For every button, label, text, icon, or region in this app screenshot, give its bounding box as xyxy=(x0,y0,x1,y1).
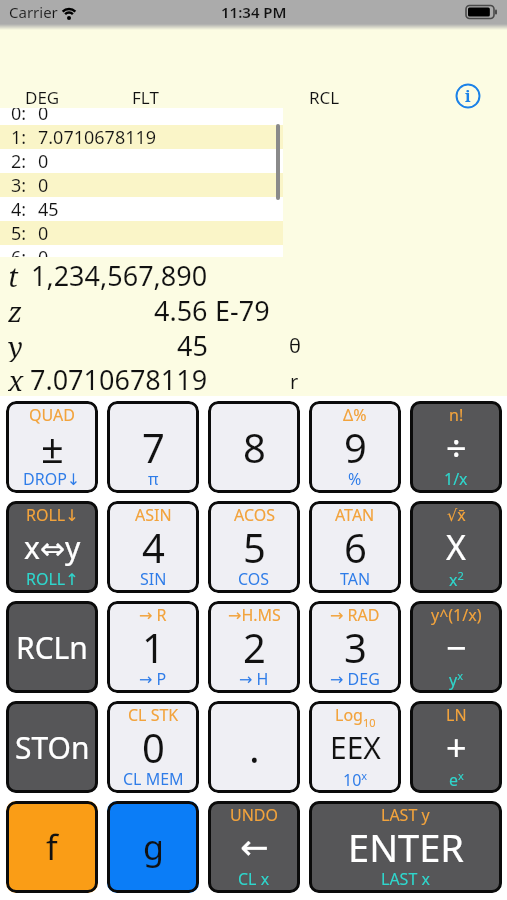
staticText: 3: xyxy=(11,173,27,197)
staticText: 10x xyxy=(343,768,368,790)
button[interactable]: √x̄ xyxy=(410,501,502,593)
staticText: r xyxy=(290,368,299,395)
button[interactable]: . xyxy=(208,701,300,793)
staticText: f xyxy=(46,824,58,870)
staticText: ← xyxy=(240,827,269,867)
button[interactable]: 3: xyxy=(0,173,283,197)
button[interactable]: Log10 xyxy=(309,701,401,793)
staticText: 0 xyxy=(38,149,49,173)
staticText: + xyxy=(446,723,467,772)
staticText: FLT xyxy=(132,86,159,109)
staticText: DEG xyxy=(25,86,60,109)
staticText: 7.0710678119 xyxy=(30,361,208,396)
button[interactable]: 5: xyxy=(0,221,283,245)
staticText: 6 xyxy=(344,520,367,574)
button[interactable]: i xyxy=(455,83,481,109)
staticText: 4: xyxy=(11,197,27,221)
button[interactable]: STOn xyxy=(6,701,98,793)
staticText: EEX xyxy=(330,727,381,768)
staticText: Log10 xyxy=(335,704,376,730)
staticText: 1: xyxy=(11,125,27,149)
button[interactable]: y^(1/x) xyxy=(410,601,502,693)
staticText: 8 xyxy=(243,420,266,474)
staticText: 5: xyxy=(11,221,27,245)
button[interactable]: ASIN xyxy=(107,501,199,593)
button[interactable]: RCLn xyxy=(6,601,98,693)
button[interactable]: 6: xyxy=(0,245,283,257)
button[interactable]: 7 xyxy=(107,401,199,493)
staticText: → R xyxy=(139,604,167,626)
staticText: TAN xyxy=(340,568,371,590)
staticText: 9 xyxy=(344,420,367,474)
staticText: ROLL↓ xyxy=(26,504,79,526)
button[interactable]: ATAN xyxy=(309,501,401,593)
staticText: y^(1/x) xyxy=(431,604,482,626)
staticText: 4 xyxy=(142,520,165,574)
button[interactable]: f xyxy=(6,801,98,893)
staticText: n! xyxy=(449,404,464,426)
staticText: y xyxy=(8,327,23,362)
staticText: 45 xyxy=(38,197,59,221)
button[interactable]: 1: xyxy=(0,125,283,149)
staticText: ex xyxy=(449,768,464,790)
staticText: 2 xyxy=(243,620,266,674)
button[interactable]: n! xyxy=(410,401,502,493)
staticText: ATAN xyxy=(335,504,375,526)
staticText: RCLn xyxy=(16,627,88,668)
staticText: 4.56 xyxy=(154,292,208,327)
button[interactable]: → R xyxy=(107,601,199,693)
staticText: 3 xyxy=(344,620,367,674)
staticText: 1 xyxy=(142,620,165,674)
staticText: 2: xyxy=(11,149,27,173)
staticText: 0 xyxy=(38,221,49,245)
staticText: QUAD xyxy=(29,404,75,426)
staticText: 5 xyxy=(243,520,266,574)
button[interactable]: CL STK xyxy=(107,701,199,793)
button[interactable]: ACOS xyxy=(208,501,300,593)
staticText: 0 xyxy=(38,245,49,257)
staticText: 1/x xyxy=(444,468,468,490)
staticText: t xyxy=(8,257,19,292)
staticText: 45 xyxy=(177,327,208,362)
staticText: ÷ xyxy=(446,423,467,472)
staticText: CL x xyxy=(238,868,270,890)
staticText: i xyxy=(465,85,471,107)
staticText: STOn xyxy=(15,727,90,768)
button[interactable]: Δ% xyxy=(309,401,401,493)
staticText: 0 xyxy=(142,720,165,774)
button[interactable]: 0: xyxy=(0,108,283,125)
staticText: → P xyxy=(139,668,167,690)
staticText: CL MEM xyxy=(123,768,184,790)
button[interactable]: UNDO xyxy=(208,801,300,893)
staticText: ROLL↑ xyxy=(26,568,79,590)
staticText: − xyxy=(446,623,467,672)
button[interactable]: 2: xyxy=(0,149,283,173)
staticText: 7.0710678119 xyxy=(38,125,157,149)
button[interactable]: QUAD xyxy=(6,401,98,493)
staticText: . xyxy=(249,720,260,774)
staticText: 11:34 PM xyxy=(221,2,287,22)
staticText: → DEG xyxy=(330,668,380,690)
button[interactable]: 4: xyxy=(0,197,283,221)
staticText: x⇔y xyxy=(24,527,81,568)
staticText: z xyxy=(8,292,23,327)
button[interactable]: g xyxy=(107,801,199,893)
staticText: → H xyxy=(239,668,269,690)
staticText: 6: xyxy=(11,245,27,257)
button[interactable]: LN xyxy=(410,701,502,793)
button[interactable]: LAST y xyxy=(309,801,502,893)
staticText: π xyxy=(148,468,159,490)
staticText: LN xyxy=(446,704,467,726)
staticText: ± xyxy=(41,420,64,474)
staticText: COS xyxy=(238,568,270,590)
button[interactable]: 8 xyxy=(208,401,300,493)
staticText: UNDO xyxy=(230,804,279,826)
staticText: x xyxy=(8,361,24,396)
staticText: √x̄ xyxy=(447,504,466,526)
staticText: CL STK xyxy=(128,704,179,726)
staticText: θ xyxy=(289,332,301,359)
staticText: SIN xyxy=(140,568,167,590)
button[interactable]: ROLL↓ xyxy=(6,501,98,593)
button[interactable]: →H.MS xyxy=(208,601,300,693)
button[interactable]: → RAD xyxy=(309,601,401,693)
